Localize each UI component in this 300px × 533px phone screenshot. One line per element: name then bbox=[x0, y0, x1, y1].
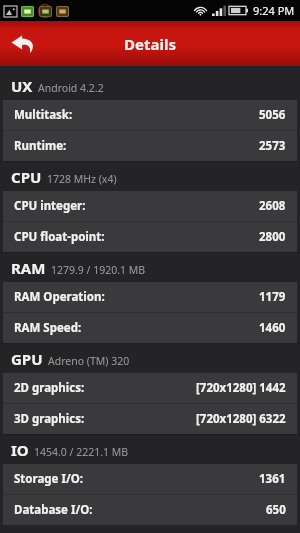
staticText: RAM Operation: bbox=[14, 289, 105, 305]
staticText: 1460 bbox=[259, 320, 286, 336]
staticText: 2608 bbox=[259, 198, 286, 214]
button[interactable]: RAM Speed: bbox=[3, 313, 297, 343]
staticText: 3D graphics: bbox=[14, 411, 85, 427]
staticText: 1454.0 / 2221.1 MB bbox=[34, 445, 129, 459]
staticText: CPU float-point: bbox=[14, 229, 105, 245]
staticText: Adreno (TM) 320 bbox=[48, 354, 130, 368]
button[interactable]: 3D graphics: bbox=[3, 404, 297, 434]
button[interactable]: Storage I/O: bbox=[3, 464, 297, 494]
button[interactable]: RAM Operation: bbox=[3, 282, 297, 312]
staticText: Runtime: bbox=[14, 138, 67, 154]
staticText: 1279.9 / 1920.1 MB bbox=[51, 263, 146, 277]
staticText: RAM bbox=[11, 258, 46, 278]
staticText: [720x1280] 6322 bbox=[196, 411, 286, 427]
staticText: 650 bbox=[266, 502, 286, 518]
staticText: 9:24 PM bbox=[253, 3, 295, 18]
staticText: CPU integer: bbox=[14, 198, 86, 214]
button[interactable]: Multitask: bbox=[3, 100, 297, 130]
staticText: IO bbox=[11, 440, 29, 460]
staticText: GPU bbox=[11, 349, 43, 369]
staticText: 2573 bbox=[259, 138, 286, 154]
staticText: 1361 bbox=[259, 471, 286, 487]
staticText: [720x1280] 1442 bbox=[196, 380, 286, 396]
staticText: Multitask: bbox=[14, 107, 73, 123]
staticText: Storage I/O: bbox=[14, 471, 84, 487]
staticText: 2D graphics: bbox=[14, 380, 85, 396]
staticText: RAM Speed: bbox=[14, 320, 82, 336]
button[interactable]: 2D graphics: bbox=[3, 373, 297, 403]
staticText: UX bbox=[11, 76, 33, 96]
staticText: 2800 bbox=[259, 229, 286, 245]
button[interactable]: CPU integer: bbox=[3, 191, 297, 221]
button[interactable]: Runtime: bbox=[3, 131, 297, 161]
staticText: 1728 MHz (x4) bbox=[47, 172, 117, 186]
button[interactable]: Database I/O: bbox=[3, 495, 297, 525]
staticText: 1179 bbox=[259, 289, 286, 305]
staticText: 5056 bbox=[259, 107, 286, 123]
button[interactable]: CPU float-point: bbox=[3, 222, 297, 252]
staticText: CPU bbox=[11, 167, 42, 187]
staticText: Database I/O: bbox=[14, 502, 93, 518]
staticText: Android 4.2.2 bbox=[38, 81, 104, 95]
button[interactable]: Back bbox=[0, 21, 46, 66]
staticText: Details bbox=[124, 34, 176, 54]
